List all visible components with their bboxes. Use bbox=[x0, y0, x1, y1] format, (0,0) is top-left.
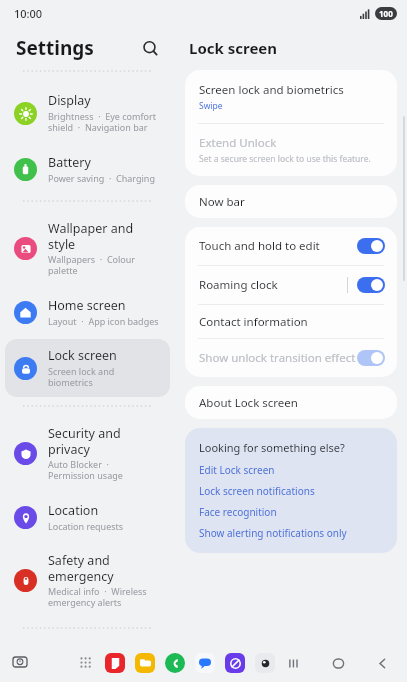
button[interactable]: Back bbox=[371, 652, 393, 674]
staticText: Set a secure screen lock to use this fea… bbox=[199, 153, 371, 165]
staticText: Screen lock and biometrics bbox=[199, 82, 344, 98]
button[interactable]: Face recognition bbox=[199, 505, 385, 519]
staticText: Wallpapers · Colour palette bbox=[48, 253, 136, 277]
button[interactable]: Wallpaper and style bbox=[5, 212, 170, 285]
staticText: Show alerting notifications only bbox=[199, 526, 347, 540]
staticText: Now bar bbox=[199, 194, 245, 210]
button[interactable]: Show unlock transition effect bbox=[185, 339, 397, 377]
button[interactable]: Home bbox=[327, 652, 349, 674]
staticText: About Lock screen bbox=[199, 395, 298, 411]
staticText: Security and privacy bbox=[48, 425, 121, 457]
staticText: Power saving · Charging bbox=[48, 172, 155, 184]
staticText: Safety and emergency bbox=[48, 552, 114, 584]
staticText: Layout · App icon badges bbox=[48, 315, 159, 327]
button[interactable]: Notes bbox=[104, 652, 126, 674]
button[interactable]: Home screen bbox=[5, 289, 170, 335]
staticText: Auto Blocker · Permission usage bbox=[48, 458, 123, 482]
staticText: Looking for something else? bbox=[199, 440, 345, 455]
button[interactable]: Search bbox=[135, 33, 165, 63]
button[interactable]: Messages bbox=[194, 652, 216, 674]
staticText: 100 bbox=[379, 8, 393, 19]
button[interactable]: Phone bbox=[164, 652, 186, 674]
button[interactable]: Touch and hold to edit bbox=[185, 227, 397, 265]
button[interactable]: Screen lock and biometrics bbox=[185, 70, 397, 123]
staticText: Medical info · Wireless emergency alerts bbox=[48, 585, 147, 609]
button[interactable]: Display bbox=[5, 84, 170, 142]
button[interactable]: Roaming clock bbox=[185, 266, 397, 304]
staticText: Contact information bbox=[199, 314, 308, 330]
staticText: Touch and hold to edit bbox=[199, 238, 320, 254]
staticText: Face recognition bbox=[199, 505, 277, 519]
button[interactable]: Lock screen notifications bbox=[199, 484, 385, 498]
button[interactable]: Battery bbox=[5, 146, 170, 192]
button[interactable]: About Lock screen bbox=[185, 386, 397, 419]
staticText: Brightness · Eye comfort shield · Naviga… bbox=[48, 110, 156, 134]
button[interactable]: Toggle bbox=[357, 350, 385, 366]
staticText: Lock screen bbox=[189, 38, 278, 58]
button[interactable]: Toggle bbox=[357, 238, 385, 254]
button[interactable]: Apps bbox=[76, 653, 96, 673]
button[interactable]: Contact information bbox=[185, 305, 397, 338]
button[interactable]: Now bar bbox=[185, 185, 397, 218]
staticText: Display bbox=[48, 92, 91, 109]
button[interactable]: Security and privacy bbox=[5, 417, 170, 490]
staticText: Lock screen bbox=[48, 347, 117, 364]
button[interactable]: Location bbox=[5, 494, 170, 540]
button[interactable]: Toggle bbox=[357, 277, 385, 293]
staticText: Extend Unlock bbox=[199, 135, 277, 151]
staticText: Show unlock transition effect bbox=[199, 350, 356, 366]
staticText: Roaming clock bbox=[199, 277, 278, 293]
button[interactable]: Lock screen bbox=[5, 339, 170, 397]
button[interactable]: Files bbox=[134, 652, 156, 674]
staticText: Edit Lock screen bbox=[199, 463, 275, 477]
staticText: Location requests bbox=[48, 520, 124, 532]
button[interactable]: Extend Unlock bbox=[185, 124, 397, 176]
staticText: Battery bbox=[48, 154, 91, 171]
staticText: Screen lock and biometrics bbox=[48, 365, 115, 389]
button[interactable]: Recents preview bbox=[8, 651, 32, 675]
staticText: Wallpaper and style bbox=[48, 220, 134, 252]
staticText: Location bbox=[48, 502, 99, 519]
button[interactable]: Show alerting notifications only bbox=[199, 526, 385, 540]
staticText: Swipe bbox=[199, 100, 223, 112]
button[interactable]: Safety and emergency bbox=[5, 544, 170, 617]
staticText: Settings bbox=[16, 35, 94, 61]
staticText: Home screen bbox=[48, 297, 126, 314]
button[interactable]: Camera bbox=[254, 652, 276, 674]
staticText: Lock screen notifications bbox=[199, 484, 315, 498]
button[interactable]: Internet bbox=[224, 652, 246, 674]
button[interactable]: Edit Lock screen bbox=[199, 463, 385, 477]
staticText: 10:00 bbox=[14, 6, 43, 21]
button[interactable]: Recents bbox=[283, 652, 305, 674]
